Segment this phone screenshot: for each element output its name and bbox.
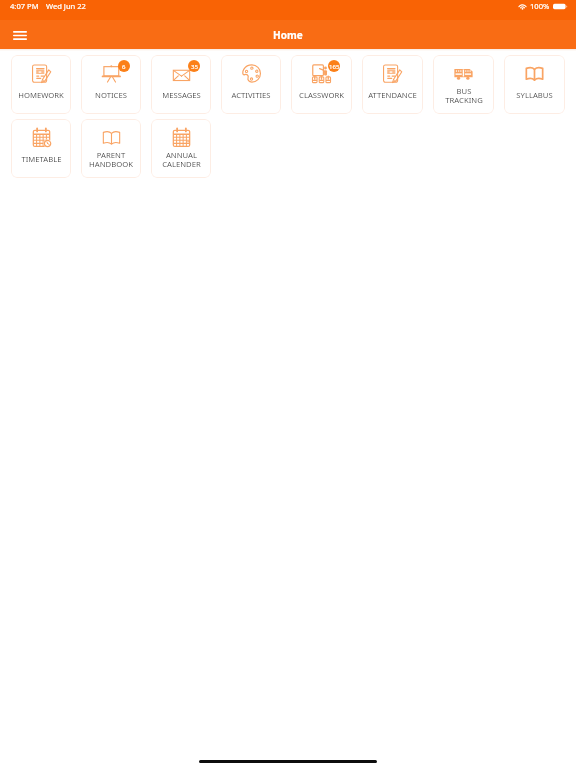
staticText: NOTICES xyxy=(95,90,127,100)
button[interactable]: ANNUAL CALENDER xyxy=(151,119,211,178)
staticText: HOMEWORK xyxy=(18,90,64,100)
button[interactable]: 35 xyxy=(151,55,211,114)
button[interactable]: ACTIVITIES xyxy=(221,55,281,114)
staticText: Wed Jun 22 xyxy=(46,1,86,11)
button[interactable]: 165 xyxy=(291,55,352,114)
button[interactable]: BUS TRACKING xyxy=(433,55,494,114)
staticText: 6 xyxy=(122,62,126,70)
button[interactable]: PARENT HANDBOOK xyxy=(81,119,141,178)
staticText: ATTENDANCE xyxy=(368,90,417,100)
staticText: PARENT HANDBOOK xyxy=(89,150,133,169)
staticText: SYLLABUS xyxy=(516,90,553,100)
staticText: BUS TRACKING xyxy=(445,86,483,105)
button[interactable]: Open navigation menu xyxy=(7,22,33,48)
button[interactable]: SYLLABUS xyxy=(504,55,565,114)
staticText: ANNUAL CALENDER xyxy=(162,150,201,169)
button[interactable]: 6 xyxy=(81,55,141,114)
staticText: CLASSWORK xyxy=(299,90,344,100)
staticText: 165 xyxy=(329,62,340,70)
staticText: 4:07 PM xyxy=(10,1,39,11)
button[interactable]: HOMEWORK xyxy=(11,55,71,114)
staticText: Home xyxy=(273,28,303,42)
staticText: ACTIVITIES xyxy=(231,90,271,100)
button[interactable]: TIMETABLE xyxy=(11,119,71,178)
button[interactable]: ATTENDANCE xyxy=(362,55,423,114)
staticText: MESSAGES xyxy=(162,90,201,100)
staticText: 100% xyxy=(530,1,550,11)
staticText: 35 xyxy=(191,62,198,70)
staticText: TIMETABLE xyxy=(21,154,62,164)
